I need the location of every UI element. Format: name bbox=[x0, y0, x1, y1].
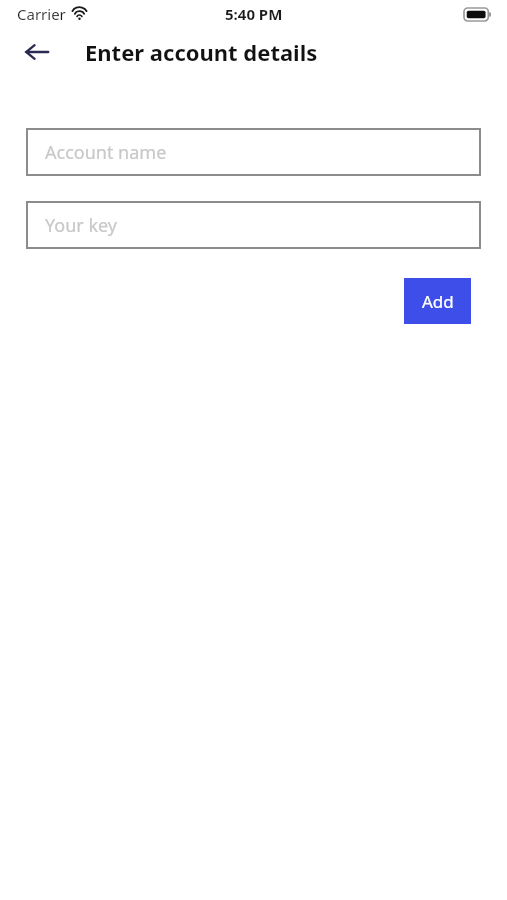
staticText: Your key bbox=[45, 213, 117, 238]
button[interactable]: Your key bbox=[26, 201, 481, 249]
button[interactable]: Account name bbox=[26, 128, 481, 176]
button[interactable]: Back bbox=[16, 31, 58, 73]
staticText: Account name bbox=[45, 140, 167, 165]
staticText: Carrier bbox=[17, 4, 66, 24]
button[interactable]: Add bbox=[404, 278, 471, 324]
staticText: 5:40 PM bbox=[225, 4, 283, 24]
staticText: Add bbox=[422, 290, 454, 313]
staticText: Enter account details bbox=[85, 37, 318, 67]
